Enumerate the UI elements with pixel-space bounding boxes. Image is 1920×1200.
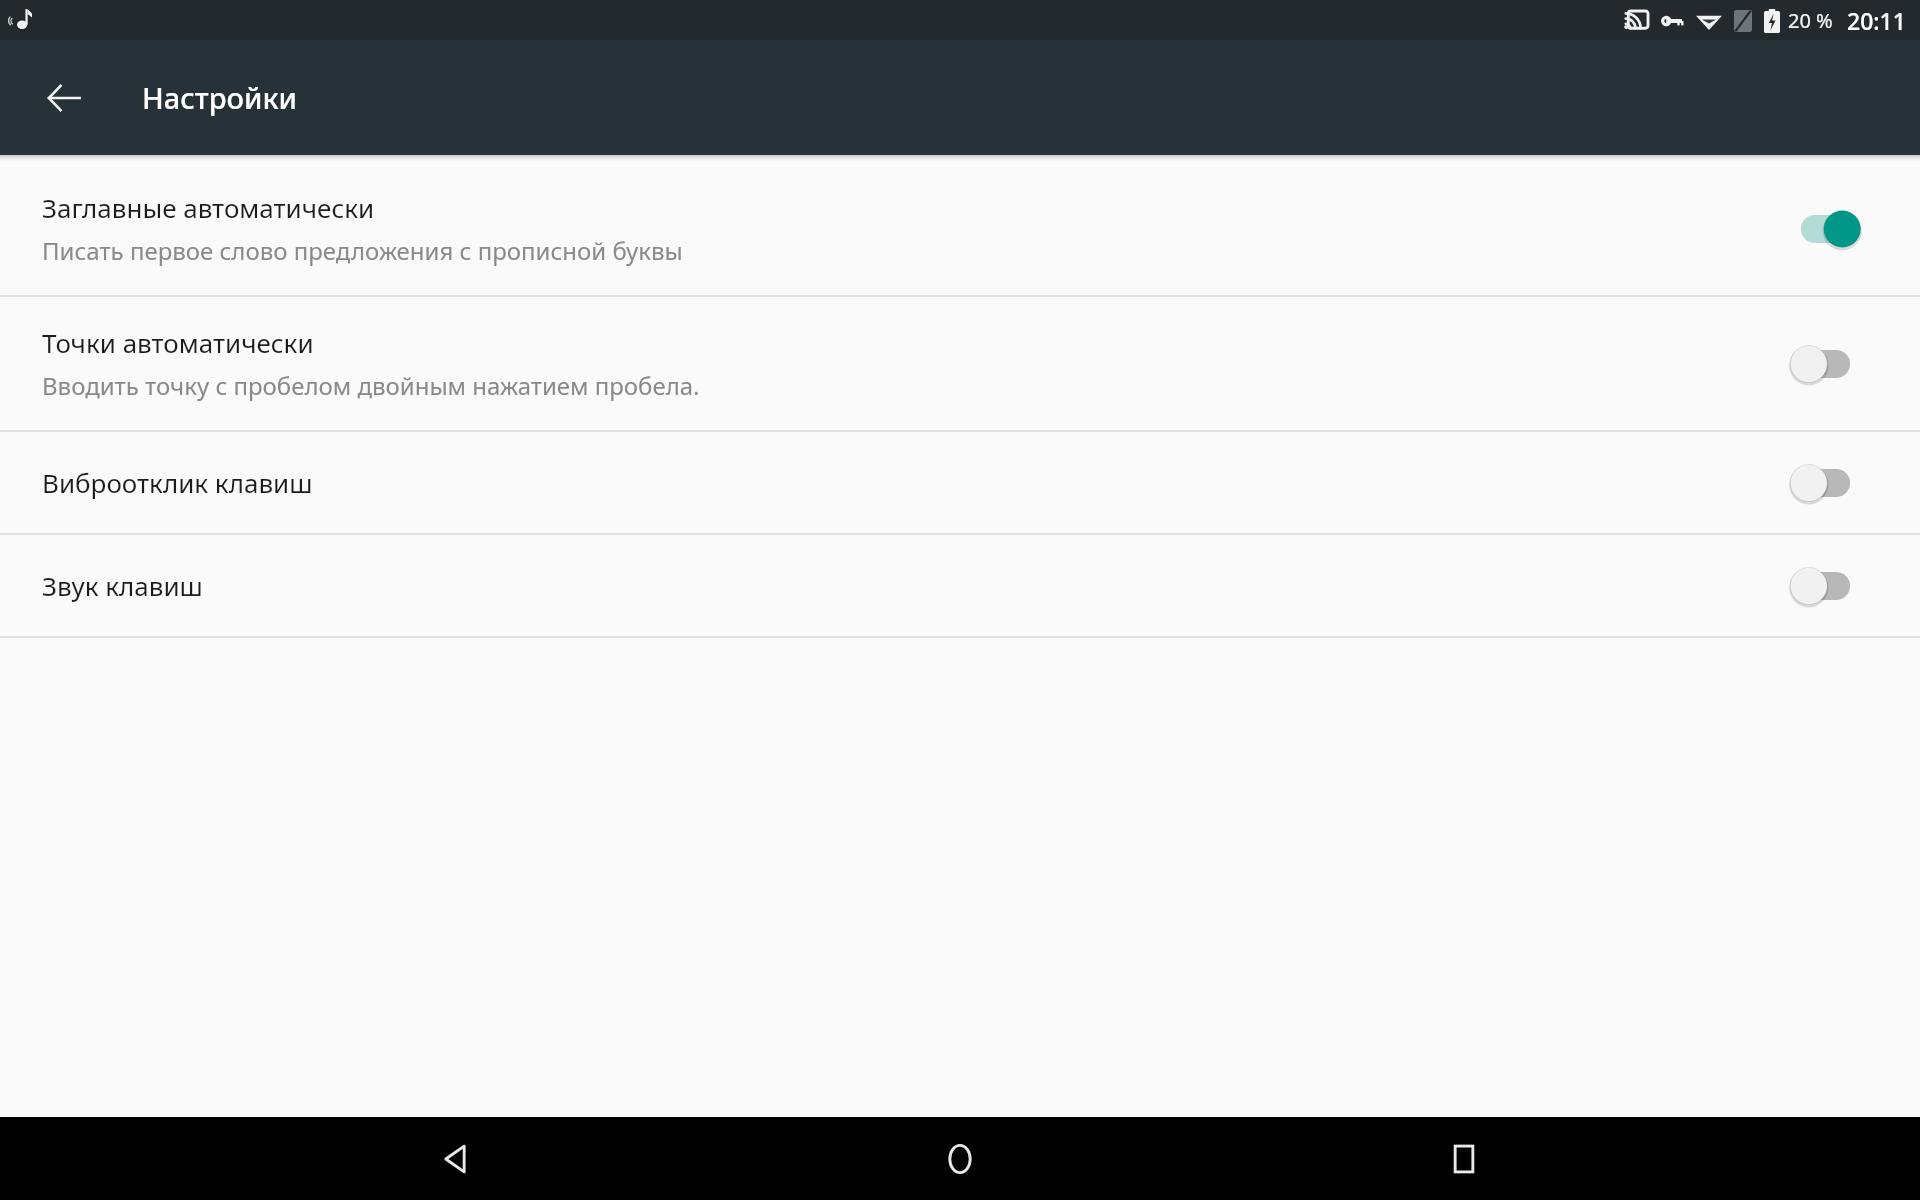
staticText: Звук клавиш <box>42 568 203 603</box>
staticText: Точки автоматически <box>42 325 314 360</box>
button[interactable]: Недавние приложения <box>1416 1117 1512 1200</box>
staticText: Заглавные автоматически <box>42 190 375 225</box>
button[interactable]: Виброотклик клавиш <box>0 432 1920 533</box>
button[interactable]: Звук клавиш <box>0 535 1920 636</box>
button[interactable]: Точки автоматически <box>0 297 1920 430</box>
button[interactable]: Включено <box>1790 201 1868 257</box>
staticText: Вводить точку с пробелом двойным нажатие… <box>42 369 700 402</box>
button[interactable]: Выключено <box>1790 455 1868 511</box>
staticText: Писать первое слово предложения с пропис… <box>42 234 683 267</box>
button[interactable]: Выключено <box>1790 336 1868 392</box>
button[interactable]: Выключено <box>1790 558 1868 614</box>
button[interactable]: Назад <box>28 62 100 134</box>
button[interactable]: Назад <box>408 1117 504 1200</box>
staticText: Виброотклик клавиш <box>42 465 313 500</box>
staticText: Настройки <box>142 78 298 117</box>
button[interactable]: Главный экран <box>912 1117 1008 1200</box>
button[interactable]: Заглавные автоматически <box>0 162 1920 295</box>
staticText: 20 % <box>1788 7 1833 34</box>
staticText: 20:11 <box>1847 5 1906 36</box>
